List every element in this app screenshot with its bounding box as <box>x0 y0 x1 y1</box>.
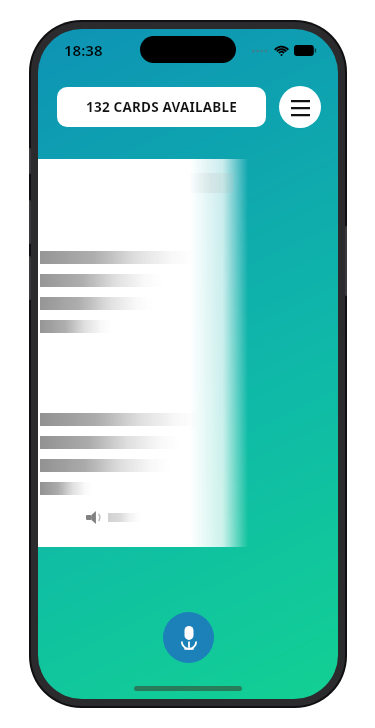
button[interactable]: Play audio <box>38 159 248 547</box>
button[interactable]: Menu <box>279 86 321 128</box>
button[interactable]: 132 CARDS AVAILABLE <box>57 87 266 127</box>
button[interactable]: Record with microphone <box>163 612 214 663</box>
button[interactable]: Play audio <box>86 511 142 524</box>
staticText: 18:38 <box>64 40 103 60</box>
staticText: 132 CARDS AVAILABLE <box>86 98 237 116</box>
